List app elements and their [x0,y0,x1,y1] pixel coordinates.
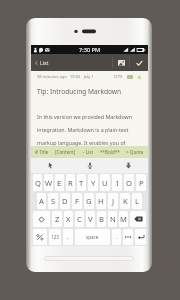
staticText: U [102,178,108,188]
staticText: space [86,234,99,240]
button[interactable]: Y [88,174,98,191]
button[interactable]: A [37,193,46,209]
button[interactable]: - List [81,146,96,158]
staticText: 1279 [113,74,123,80]
button[interactable]: Hide keyboard [109,158,148,173]
button[interactable]: U [100,174,110,191]
staticText: R [68,178,73,188]
button[interactable]: E [55,174,64,191]
staticText: - List [83,149,94,155]
button[interactable]: K [120,193,130,209]
staticText: I [116,178,119,188]
staticText: Tip: Introducing Markdown [37,87,122,96]
staticText: Q [35,178,41,188]
button[interactable]: 123 [49,229,61,245]
button[interactable]: D [60,193,70,209]
staticText: # Title [35,149,49,155]
staticText: G [86,196,92,206]
staticText: J [112,196,115,206]
button[interactable]: Symbols [123,229,133,245]
button[interactable]: H [96,193,106,209]
staticText: H [98,196,104,206]
staticText: 38 minutes ago 10:52 July 1 [37,74,94,80]
staticText: D [62,196,68,206]
button[interactable]: T [77,174,86,191]
button[interactable]: Voice input [70,158,109,173]
staticText: F [75,196,79,206]
staticText: Y [91,178,96,188]
staticText: S [51,196,56,206]
staticText: Z [55,214,60,224]
button[interactable]: W [44,174,53,191]
staticText: K [123,196,128,206]
staticText: M [120,214,127,224]
button[interactable]: S [48,193,58,209]
button[interactable]: # Title [33,146,51,158]
button[interactable]: . [112,229,121,245]
staticText: 123 [51,234,59,240]
button[interactable]: J [108,193,118,209]
button[interactable]: O [124,174,134,191]
button[interactable]: Keyboard settings [31,158,70,173]
button[interactable]: N [108,211,117,227]
staticText: > Quote [126,149,144,155]
staticText: E [57,178,62,188]
button[interactable]: I [112,174,122,191]
button[interactable]: , [63,229,73,245]
staticText: [Content] [55,149,76,155]
button[interactable]: Q [33,174,42,191]
staticText: V [88,214,93,224]
button[interactable]: R [66,174,75,191]
staticText: C [77,214,82,224]
button[interactable]: M [119,211,128,227]
staticText: X [66,214,71,224]
button[interactable]: Enter [135,229,146,245]
staticText: **Bold** [100,149,120,155]
button[interactable]: Change language [33,229,47,245]
staticText: . [116,233,118,241]
button[interactable]: L [132,193,142,209]
staticText: List [40,59,49,66]
staticText: 7:30 PM [79,46,101,54]
staticText: L [135,196,139,206]
staticText: W [45,178,53,188]
button[interactable]: [Content] [53,146,78,158]
button[interactable]: space [75,229,110,245]
staticText: T [79,178,84,188]
button[interactable]: Shift [33,211,50,227]
staticText: A [39,196,44,206]
staticText: O [126,178,132,188]
button[interactable]: G [84,193,94,209]
button[interactable]: **Bold** [98,146,122,158]
button[interactable]: F [72,193,82,209]
staticText: P [139,178,144,188]
staticText: , [67,233,69,241]
button[interactable]: Insert image [113,54,129,71]
button[interactable]: List [31,54,55,71]
button[interactable]: Done [130,54,148,71]
staticText: N [110,214,116,224]
staticText: integration. Markdown is a plain-text [37,126,129,133]
button[interactable]: Backspace [130,211,146,227]
staticText: In this version we provided Markdown [37,113,133,120]
button[interactable]: V [86,211,95,227]
button[interactable]: > Quote [124,146,146,158]
button[interactable]: Z [52,211,62,227]
staticText: markup language. It enables you of [37,139,126,146]
button[interactable]: X [64,211,73,227]
button[interactable]: B [97,211,106,227]
button[interactable]: C [75,211,84,227]
staticText: B [99,214,104,224]
button[interactable]: P [136,174,146,191]
